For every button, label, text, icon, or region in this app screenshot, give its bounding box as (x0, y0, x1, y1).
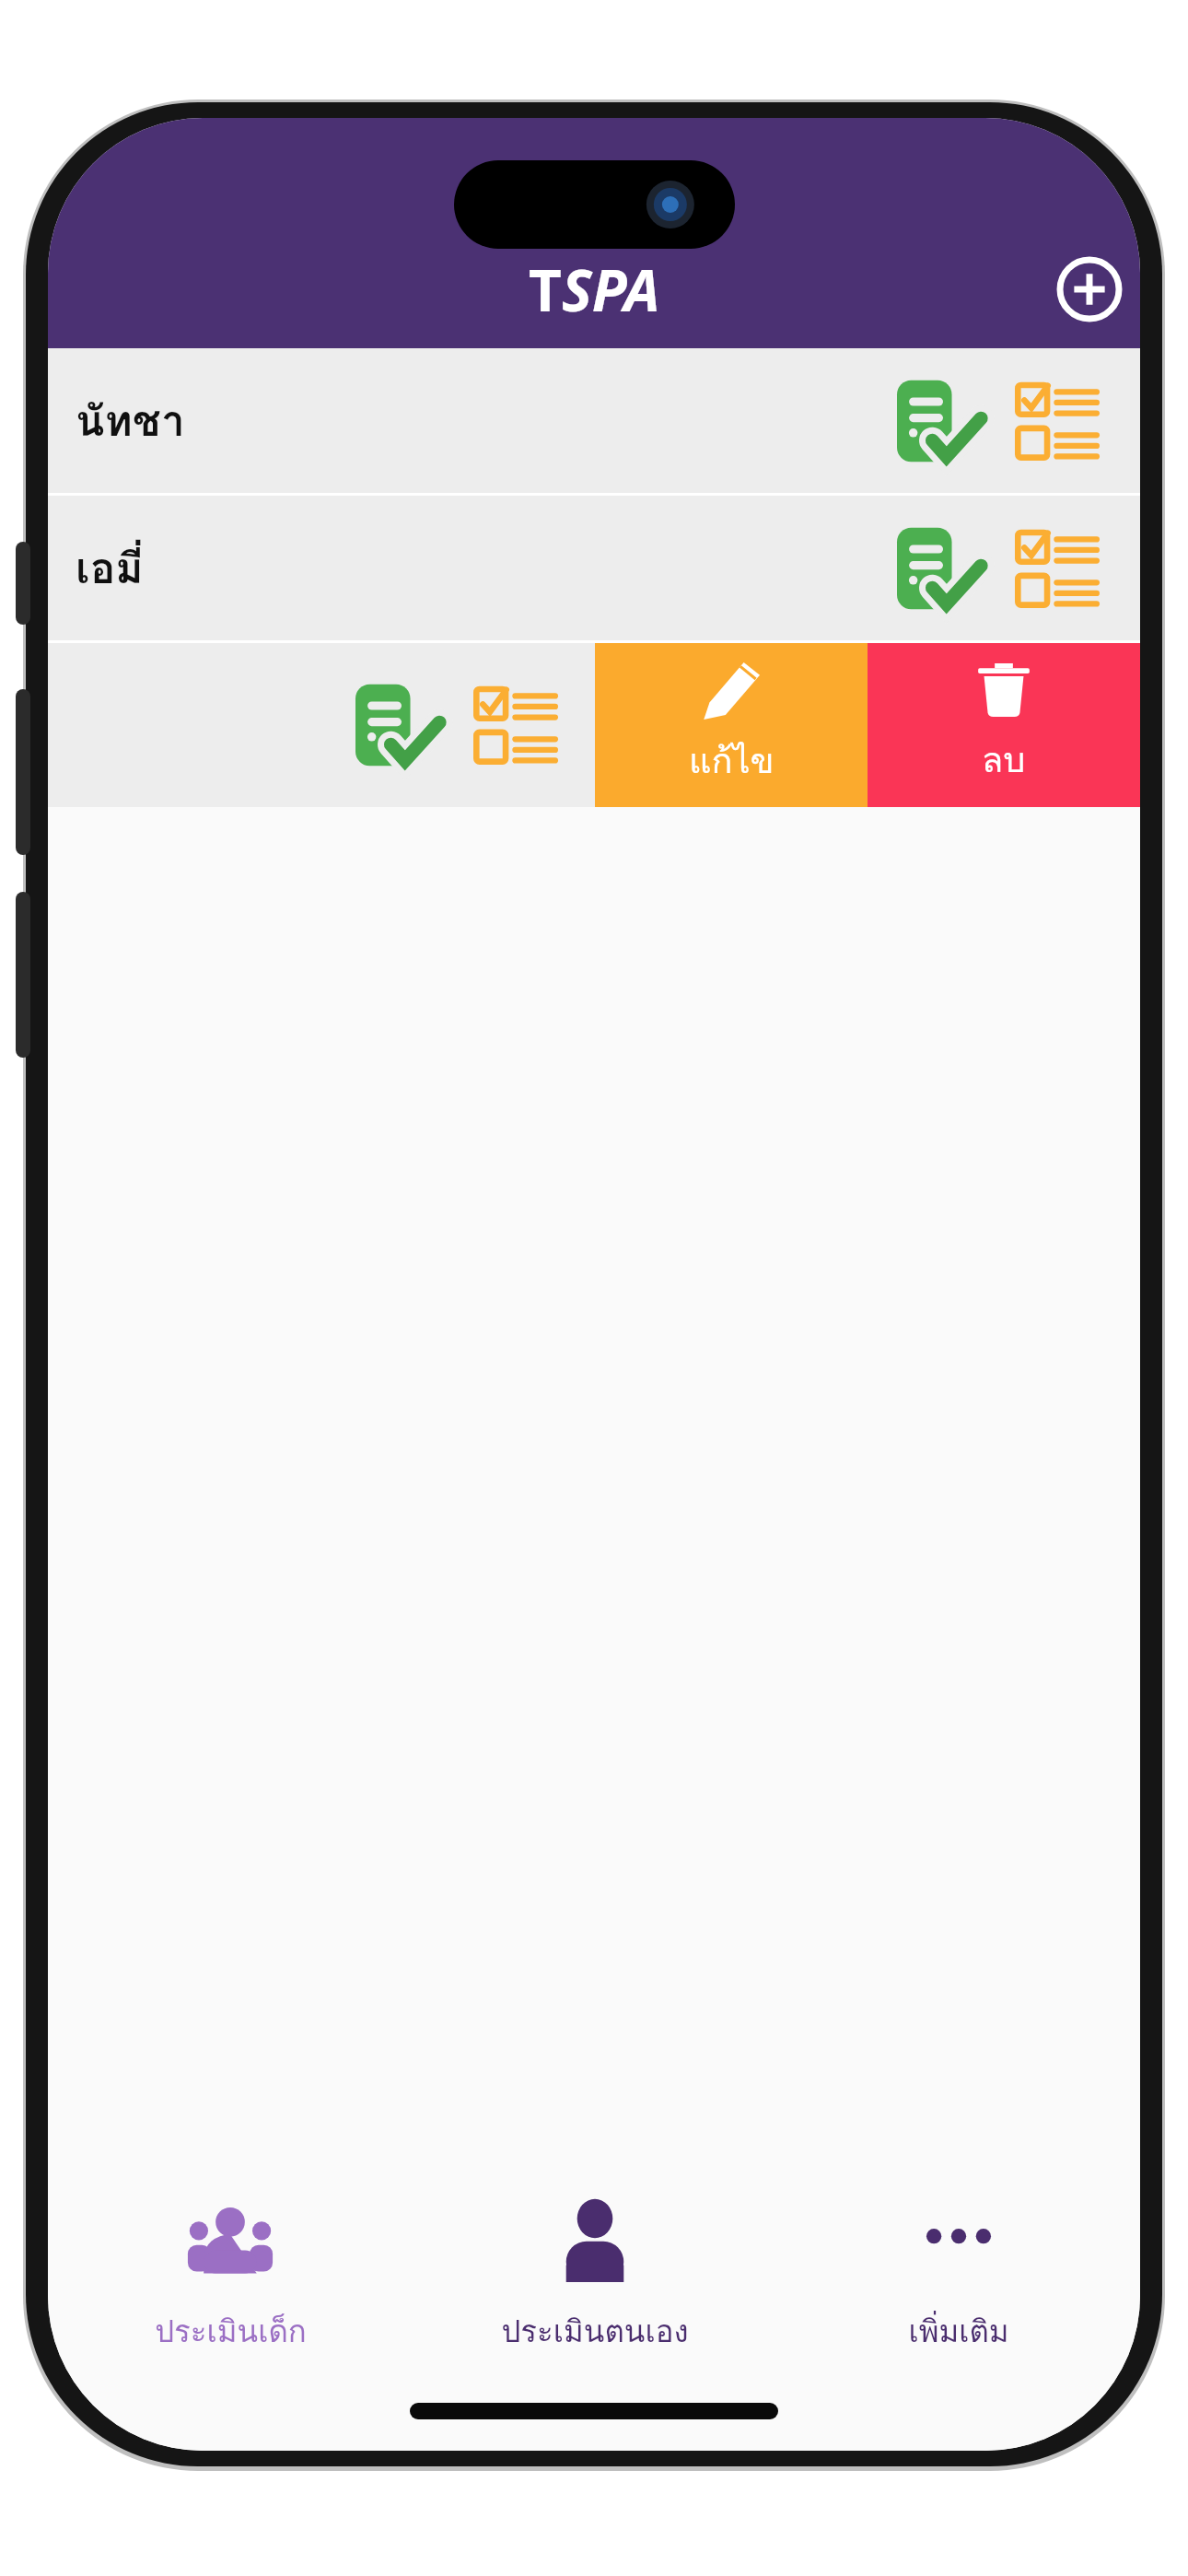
button[interactable]: Assessment form (886, 513, 996, 624)
button[interactable]: ลบ (868, 643, 1140, 807)
staticText: SPA (562, 251, 660, 328)
button[interactable]: Checklist (1002, 513, 1112, 624)
button[interactable]: Checklist (460, 670, 571, 780)
staticText: ประเมินเด็ก (155, 2307, 307, 2355)
button[interactable]: Assessment form (344, 670, 455, 780)
button[interactable]: เอมี่ (48, 496, 1140, 640)
button[interactable]: Assessment form (48, 643, 595, 807)
button[interactable]: Add (1039, 239, 1140, 340)
staticText: เอมี่ (76, 534, 144, 602)
staticText: ลบ (982, 732, 1026, 787)
staticText: นัทชา (76, 387, 185, 454)
button[interactable]: Checklist (1002, 366, 1112, 476)
button[interactable]: เพิ่มเติม (776, 2174, 1140, 2451)
button[interactable]: Assessment form (886, 366, 996, 476)
button[interactable]: ประเมินตนเอง (413, 2174, 776, 2451)
button[interactable]: นัทชา (48, 348, 1140, 493)
button[interactable]: แก้ไข (595, 643, 868, 807)
staticText: ประเมินตนเอง (501, 2307, 689, 2355)
staticText: แก้ไข (689, 732, 775, 788)
staticText: T (529, 251, 562, 328)
button[interactable]: ประเมินเด็ก (48, 2174, 413, 2451)
staticText: เพิ่มเติม (908, 2307, 1009, 2355)
